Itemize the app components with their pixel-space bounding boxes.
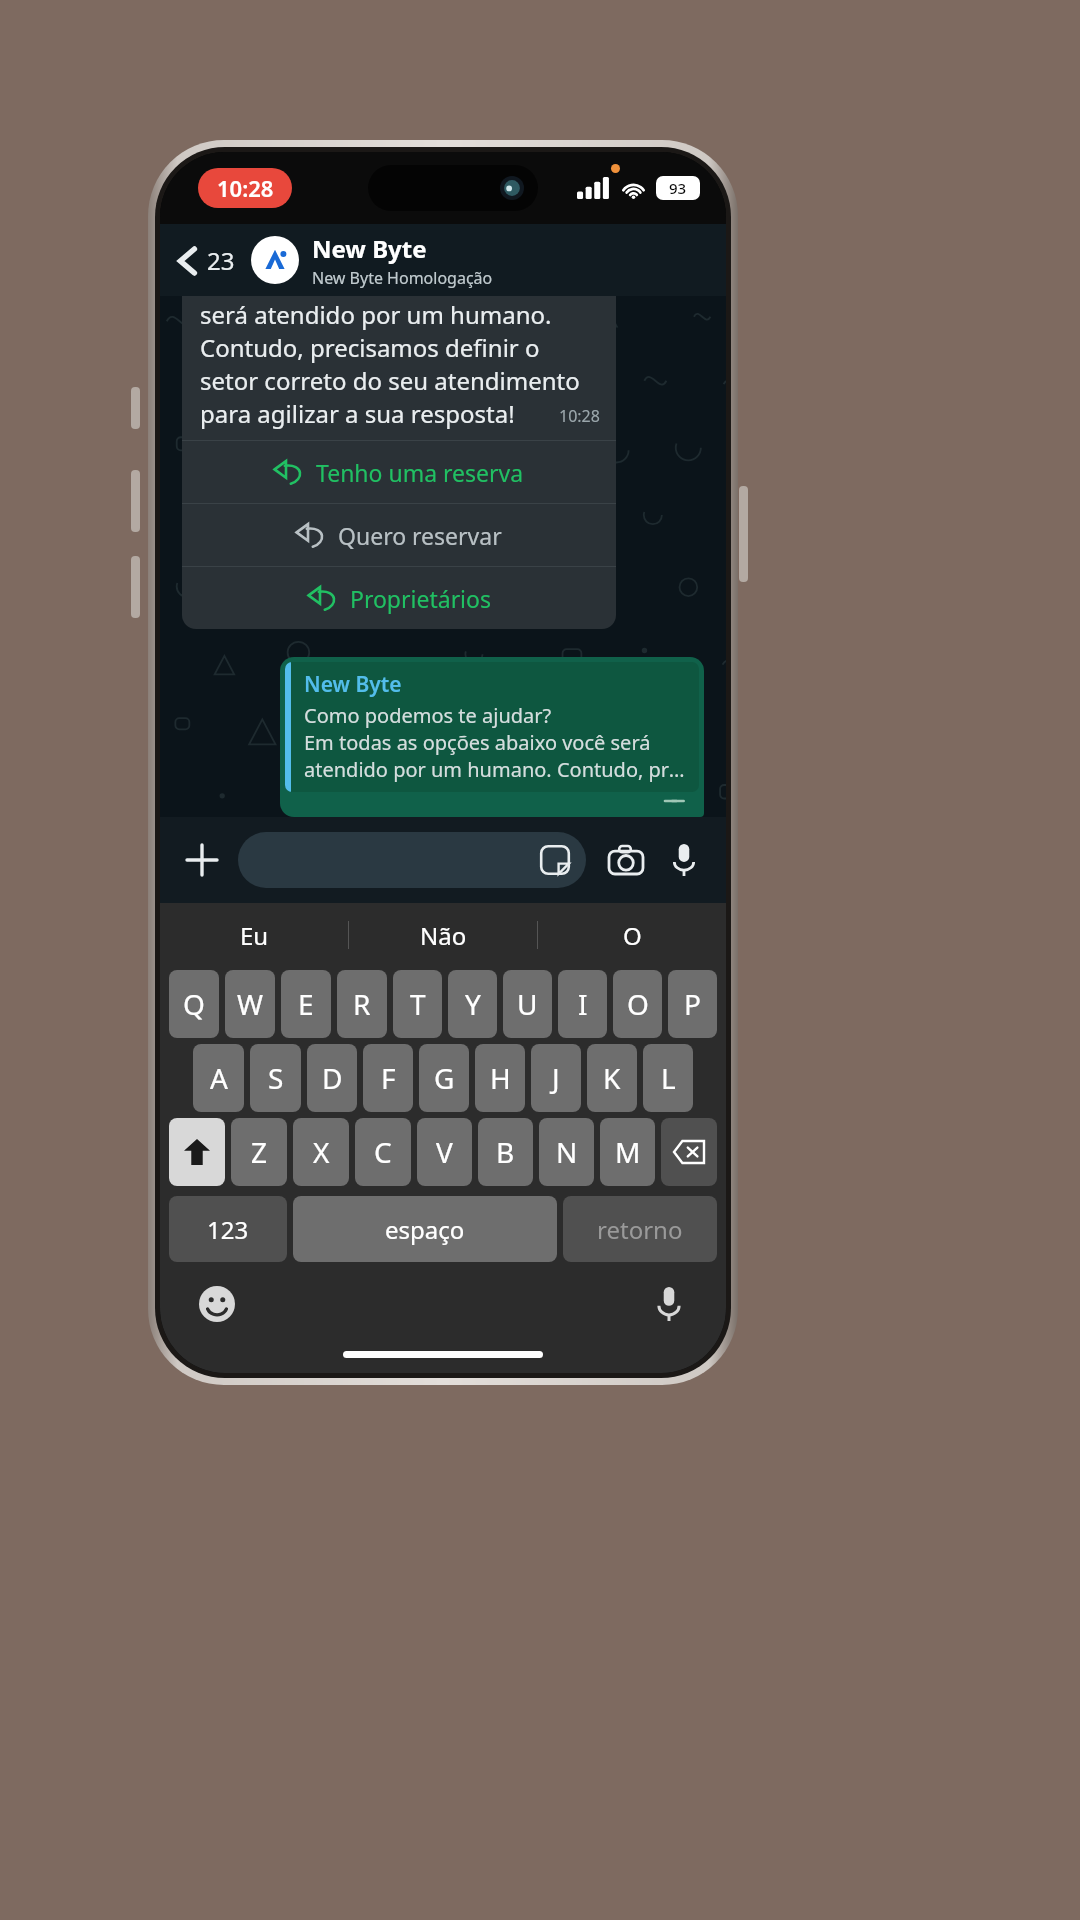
button[interactable]: F <box>363 1044 413 1112</box>
button[interactable]: Shift <box>169 1118 225 1186</box>
button[interactable]: Z <box>231 1118 287 1186</box>
button[interactable]: Voice message <box>658 834 710 886</box>
staticText: U <box>517 985 538 1023</box>
staticText: para agilizar a sua resposta! <box>200 397 515 430</box>
staticText: Em todas as opções abaixo você será <box>304 729 651 756</box>
staticText: C <box>374 1133 392 1171</box>
button[interactable]: J <box>531 1044 581 1112</box>
button[interactable]: A <box>193 1044 244 1112</box>
button[interactable]: Emoji <box>194 1281 240 1327</box>
staticText: New Byte Homologação <box>312 267 493 289</box>
button[interactable]: K <box>587 1044 637 1112</box>
staticText: será atendido por um humano. <box>200 298 552 331</box>
staticText: X <box>313 1133 330 1171</box>
button[interactable]: New Byte <box>285 662 699 792</box>
staticText: E <box>298 985 314 1023</box>
staticText: Como podemos te ajudar? <box>304 702 552 729</box>
staticText: espaço <box>385 1213 465 1246</box>
staticText: 10:28 <box>559 405 600 427</box>
staticText: Quero reservar <box>338 520 502 551</box>
button[interactable]: G <box>419 1044 469 1112</box>
button[interactable]: C <box>355 1118 411 1186</box>
staticText: O <box>623 919 642 952</box>
staticText: 23 <box>207 244 235 277</box>
button[interactable]: E <box>281 970 331 1038</box>
button[interactable]: R <box>337 970 387 1038</box>
button[interactable]: I <box>558 970 607 1038</box>
staticText: retorno <box>597 1213 683 1246</box>
button[interactable]: U <box>503 970 552 1038</box>
button[interactable]: N <box>539 1118 594 1186</box>
staticText: I <box>578 985 588 1023</box>
button[interactable]: espaço <box>293 1196 557 1262</box>
staticText: G <box>434 1059 455 1097</box>
staticText: L <box>661 1059 676 1097</box>
staticText: Eu <box>240 919 269 952</box>
button[interactable] <box>238 832 586 888</box>
staticText: O <box>627 985 649 1023</box>
button[interactable]: T <box>393 970 442 1038</box>
staticText: T <box>410 985 426 1023</box>
button[interactable]: Proprietários <box>182 567 616 629</box>
staticText: N <box>556 1133 578 1171</box>
button[interactable]: Back, 23 unread <box>174 238 239 283</box>
staticText: M <box>615 1133 641 1171</box>
staticText: 10:28 <box>217 173 274 203</box>
button[interactable]: X <box>293 1118 349 1186</box>
staticText: Z <box>251 1133 268 1171</box>
staticText: W <box>237 985 264 1023</box>
button[interactable]: Y <box>448 970 497 1038</box>
staticText: 93 <box>669 178 687 198</box>
staticText: Contudo, precisamos definir o <box>200 331 540 364</box>
button[interactable]: Q <box>169 970 219 1038</box>
button[interactable]: Attach <box>176 834 228 886</box>
button[interactable]: O <box>613 970 662 1038</box>
staticText: H <box>490 1059 511 1097</box>
button[interactable]: Contact avatar <box>251 236 299 284</box>
staticText: Tenho uma reserva <box>316 457 524 488</box>
staticText: V <box>436 1133 453 1171</box>
staticText: atendido por um humano. Contudo, preci… <box>304 756 686 783</box>
button[interactable]: L <box>643 1044 693 1112</box>
button[interactable]: S <box>250 1044 301 1112</box>
button[interactable]: Backspace <box>661 1118 717 1186</box>
button[interactable]: Quero reservar <box>182 504 616 566</box>
staticText: B <box>496 1133 515 1171</box>
button[interactable]: Camera <box>600 834 652 886</box>
button[interactable]: D <box>307 1044 357 1112</box>
staticText: 123 <box>207 1213 249 1246</box>
staticText: J <box>552 1059 560 1097</box>
button[interactable]: H <box>475 1044 525 1112</box>
button[interactable]: B <box>478 1118 533 1186</box>
button[interactable]: V <box>417 1118 472 1186</box>
button[interactable]: New Byte <box>312 228 710 293</box>
staticText: Y <box>465 985 481 1023</box>
button[interactable]: retorno <box>563 1196 717 1262</box>
staticText: R <box>353 985 371 1023</box>
staticText: D <box>322 1059 343 1097</box>
staticText: New Byte <box>312 232 427 265</box>
button[interactable]: Tenho uma reserva <box>182 441 616 503</box>
button[interactable]: M <box>600 1118 655 1186</box>
button[interactable]: 123 <box>169 1196 287 1262</box>
staticText: Não <box>420 919 467 952</box>
staticText: P <box>684 985 701 1023</box>
button[interactable]: Dictation <box>646 1281 692 1327</box>
staticText: S <box>268 1059 284 1097</box>
button[interactable]: Eu <box>160 903 348 967</box>
button[interactable]: W <box>225 970 275 1038</box>
staticText: setor correto do seu atendimento <box>200 364 580 397</box>
staticText: K <box>603 1059 621 1097</box>
staticText: A <box>210 1059 228 1097</box>
button[interactable]: O <box>538 903 726 967</box>
button[interactable]: Não <box>349 903 537 967</box>
staticText: F <box>381 1059 396 1097</box>
staticText: Proprietários <box>350 583 491 614</box>
staticText: Q <box>183 985 205 1023</box>
button[interactable]: P <box>668 970 717 1038</box>
staticText: New Byte <box>304 670 402 699</box>
